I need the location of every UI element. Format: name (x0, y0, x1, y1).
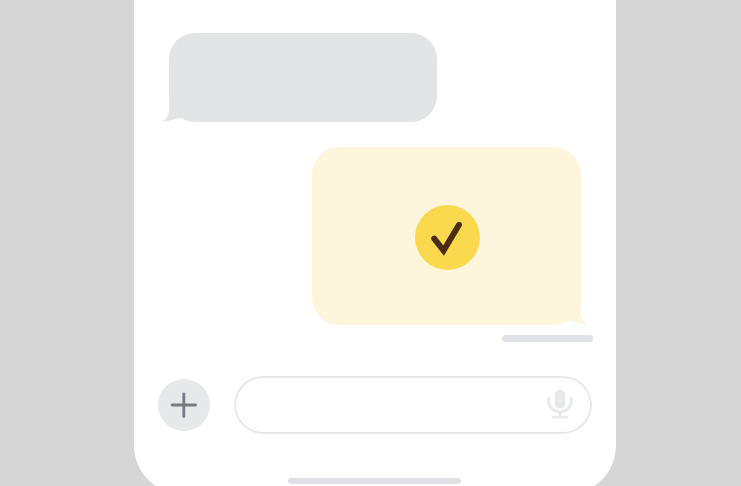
button[interactable]: Add attachment (158, 379, 210, 431)
button[interactable]: Voice input (542, 376, 578, 434)
button[interactable]: Message from contact (169, 33, 437, 122)
button[interactable]: Message input field (234, 376, 592, 434)
button[interactable]: Sent message, delivered (312, 147, 581, 325)
